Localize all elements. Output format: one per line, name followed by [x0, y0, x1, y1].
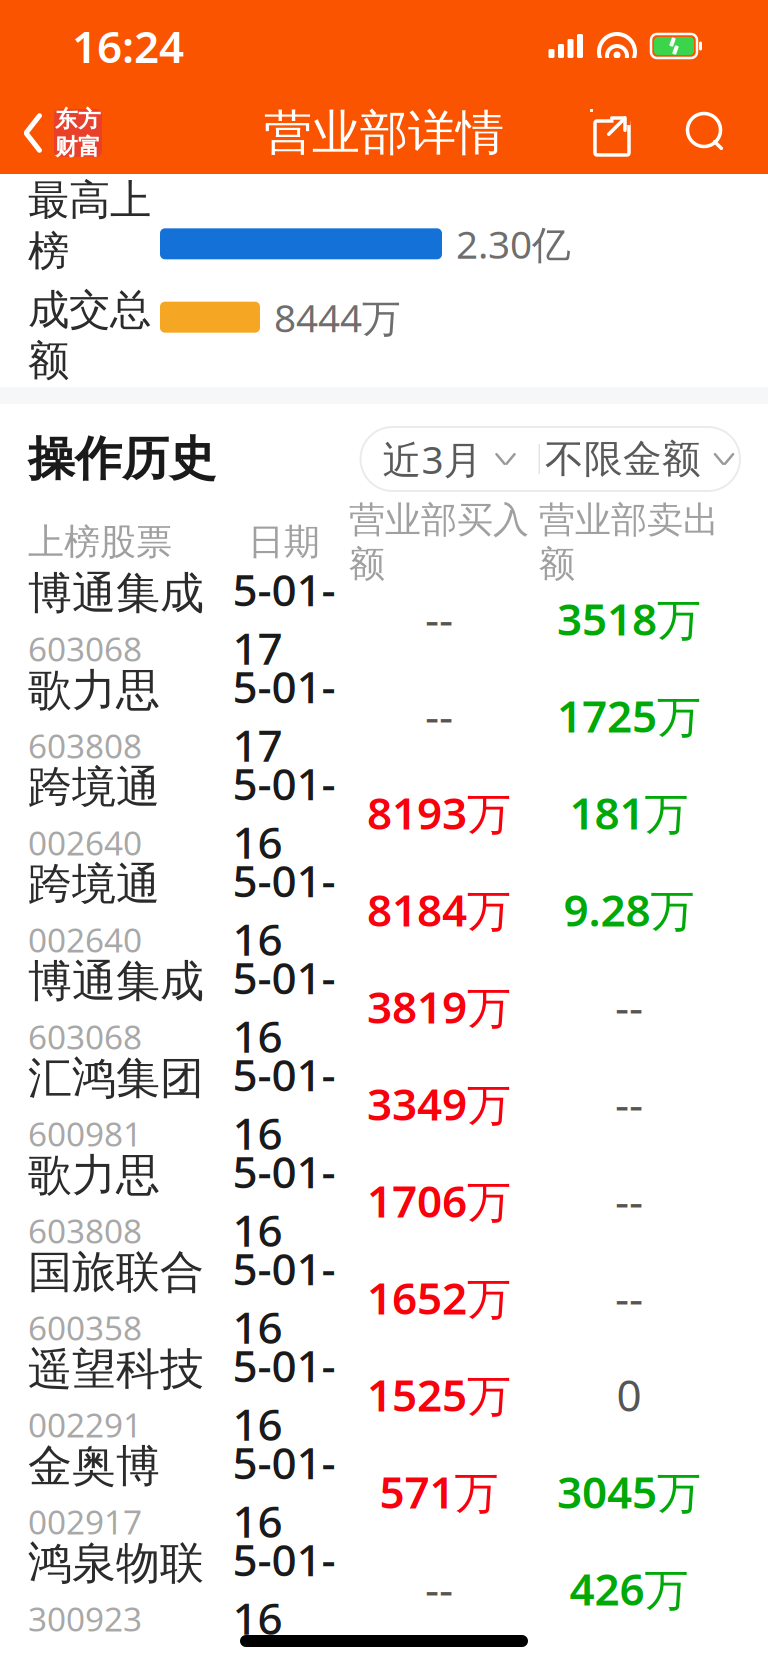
staticText: 002640 — [28, 917, 142, 962]
staticText: 操作历史 — [28, 430, 216, 488]
staticText: 3819万 — [367, 977, 511, 1036]
button[interactable]: 金奥博 — [0, 1443, 768, 1540]
staticText: 东方 — [55, 105, 101, 133]
staticText: 603808 — [28, 1208, 142, 1253]
staticText: 571万 — [379, 1462, 498, 1521]
staticText: 鸿泉物联 — [28, 1536, 204, 1590]
button[interactable]: 返回 — [0, 97, 102, 169]
staticText: 603068 — [28, 1014, 142, 1059]
staticText: 002291 — [28, 1402, 142, 1447]
staticText: 9.28万 — [563, 880, 694, 939]
staticText: 国旅联合 — [28, 1245, 204, 1299]
staticText: 5-01-16 — [232, 851, 335, 968]
button[interactable]: 不限金额 — [540, 427, 740, 491]
staticText: 歌力思 — [28, 1148, 160, 1202]
staticText: 3518万 — [557, 589, 701, 648]
staticText: 歌力思 — [28, 663, 160, 717]
staticText: 上榜股票 — [28, 520, 172, 564]
staticText: 8193万 — [367, 783, 511, 842]
staticText: -- — [615, 977, 643, 1036]
staticText: 日期 — [248, 520, 320, 564]
staticText: 5-01-16 — [232, 1045, 335, 1162]
staticText: 汇鸿集团 — [28, 1051, 204, 1105]
staticText: 5-01-16 — [232, 754, 335, 871]
staticText: 002917 — [28, 1499, 142, 1544]
staticText: 5-01-17 — [232, 657, 335, 774]
staticText: 1725万 — [557, 686, 701, 745]
button[interactable]: 跨境通 — [0, 861, 768, 958]
button[interactable]: 歌力思 — [0, 1152, 768, 1249]
staticText: 5-01-16 — [232, 948, 335, 1065]
button[interactable]: 博通集成 — [0, 570, 768, 667]
button[interactable]: 跨境通 — [0, 764, 768, 861]
staticText: 0 — [616, 1365, 641, 1424]
staticText: 不限金额 — [545, 435, 701, 483]
staticText: 3349万 — [367, 1074, 511, 1133]
staticText: 8184万 — [367, 880, 511, 939]
staticText: 遥望科技 — [28, 1342, 204, 1396]
staticText: 营业部买入额 — [349, 498, 529, 586]
staticText: 营业部卖出额 — [539, 498, 719, 586]
staticText: 3045万 — [557, 1462, 701, 1521]
staticText: 5-01-16 — [232, 1142, 335, 1259]
staticText: 002640 — [28, 820, 142, 865]
button[interactable]: 分享 — [578, 97, 646, 169]
staticText: 2.30亿 — [456, 218, 571, 269]
staticText: 16:24 — [72, 17, 184, 75]
button[interactable]: 遥望科技 — [0, 1346, 768, 1443]
staticText: 181万 — [569, 783, 688, 842]
staticText: 603068 — [28, 626, 142, 671]
staticText: 博通集成 — [28, 954, 204, 1008]
button[interactable]: 汇鸿集团 — [0, 1055, 768, 1152]
staticText: 600981 — [28, 1111, 142, 1156]
staticText: 603808 — [28, 723, 142, 768]
staticText: 成交总额 — [28, 284, 151, 386]
staticText: 博通集成 — [28, 566, 204, 620]
staticText: 8444万 — [274, 291, 401, 343]
staticText: 1525万 — [367, 1365, 511, 1424]
staticText: 5-01-16 — [232, 1239, 335, 1356]
staticText: 1706万 — [367, 1171, 511, 1230]
staticText: 300923 — [28, 1596, 142, 1641]
staticText: -- — [615, 1074, 643, 1133]
staticText: 最高上榜 — [28, 175, 151, 276]
staticText: 426万 — [569, 1559, 688, 1618]
staticText: 金奥博 — [28, 1439, 160, 1493]
button[interactable]: 国旅联合 — [0, 1249, 768, 1346]
staticText: 600358 — [28, 1305, 142, 1350]
staticText: -- — [615, 1171, 643, 1230]
button[interactable]: 歌力思 — [0, 667, 768, 764]
staticText: -- — [615, 1268, 643, 1327]
staticText: 营业部详情 — [264, 103, 504, 162]
staticText: 5-01-16 — [232, 1336, 335, 1453]
staticText: 跨境通 — [28, 760, 160, 814]
staticText: -- — [425, 686, 453, 745]
staticText: 跨境通 — [28, 857, 160, 911]
button[interactable]: 鸿泉物联 — [0, 1540, 768, 1637]
staticText: 5-01-16 — [232, 1530, 335, 1647]
staticText: 5-01-16 — [232, 1433, 335, 1550]
button[interactable]: 近3月 — [360, 427, 538, 491]
staticText: -- — [425, 589, 453, 648]
staticText: -- — [425, 1559, 453, 1618]
staticText: 近3月 — [382, 433, 482, 485]
staticText: 财富 — [55, 133, 101, 161]
button[interactable]: 博通集成 — [0, 958, 768, 1055]
button[interactable]: 搜索 — [672, 99, 740, 167]
staticText: 1652万 — [367, 1268, 511, 1327]
staticText: 5-01-17 — [232, 560, 335, 677]
